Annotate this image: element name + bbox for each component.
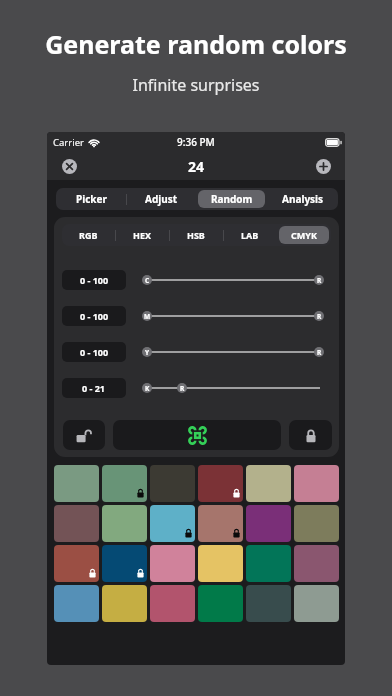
button[interactable]: 0 - 100: [62, 342, 126, 362]
button[interactable]: [246, 465, 291, 502]
staticText: C: [145, 276, 150, 285]
button[interactable]: [102, 465, 147, 502]
button[interactable]: 0 - 21: [62, 378, 126, 398]
button[interactable]: [198, 585, 243, 622]
staticText: Carrier: [53, 136, 84, 149]
button[interactable]: [294, 465, 339, 502]
button[interactable]: [150, 545, 195, 582]
button[interactable]: [246, 585, 291, 622]
button[interactable]: LAB: [225, 226, 275, 244]
button[interactable]: [102, 545, 147, 582]
staticText: K: [145, 384, 150, 393]
button[interactable]: [246, 545, 291, 582]
staticText: M: [144, 312, 151, 321]
staticText: R: [180, 384, 185, 393]
staticText: 0 - 21: [82, 382, 106, 394]
staticText: Generate random colors: [45, 27, 347, 61]
button[interactable]: 0 - 100: [62, 270, 126, 290]
button[interactable]: [150, 505, 195, 542]
button[interactable]: [54, 465, 99, 502]
button[interactable]: [54, 545, 99, 582]
button[interactable]: [294, 505, 339, 542]
button[interactable]: [102, 585, 147, 622]
button[interactable]: [54, 505, 99, 542]
staticText: R: [317, 348, 322, 357]
staticText: Random: [211, 192, 253, 206]
button[interactable]: HSB: [171, 226, 221, 244]
button[interactable]: [294, 585, 339, 622]
button[interactable]: CMYK: [279, 226, 329, 244]
staticText: Y: [145, 348, 150, 357]
button[interactable]: [102, 505, 147, 542]
button[interactable]: RGB: [64, 226, 113, 244]
button[interactable]: [198, 465, 243, 502]
button[interactable]: [198, 505, 243, 542]
staticText: Analysis: [282, 192, 324, 206]
button[interactable]: Add: [316, 159, 331, 174]
staticText: Infinite surprises: [132, 74, 260, 96]
staticText: CMYK: [291, 229, 317, 241]
staticText: HEX: [133, 229, 151, 241]
staticText: LAB: [241, 229, 259, 241]
button[interactable]: Unlock all: [63, 420, 105, 450]
staticText: Adjust: [145, 192, 178, 206]
staticText: 0 - 100: [80, 274, 109, 286]
button[interactable]: [294, 545, 339, 582]
button[interactable]: Adjust: [128, 190, 194, 208]
button[interactable]: Random: [198, 190, 265, 208]
button[interactable]: Picker: [58, 190, 124, 208]
staticText: 24: [188, 157, 205, 176]
staticText: Picker: [76, 192, 107, 206]
button[interactable]: [150, 585, 195, 622]
button[interactable]: [54, 585, 99, 622]
staticText: R: [317, 312, 322, 321]
button[interactable]: [198, 545, 243, 582]
staticText: RGB: [79, 229, 98, 241]
button[interactable]: 0 - 100: [62, 306, 126, 326]
button[interactable]: Analysis: [269, 190, 336, 208]
button[interactable]: HEX: [117, 226, 167, 244]
staticText: R: [317, 276, 322, 285]
button[interactable]: [246, 505, 291, 542]
button[interactable]: Lock all: [289, 420, 332, 450]
staticText: 9:36 PM: [177, 135, 215, 149]
staticText: 0 - 100: [80, 310, 109, 322]
staticText: HSB: [187, 229, 205, 241]
button[interactable]: Close: [62, 159, 77, 174]
button[interactable]: Generate random colors: [113, 420, 281, 450]
staticText: 0 - 100: [80, 346, 109, 358]
